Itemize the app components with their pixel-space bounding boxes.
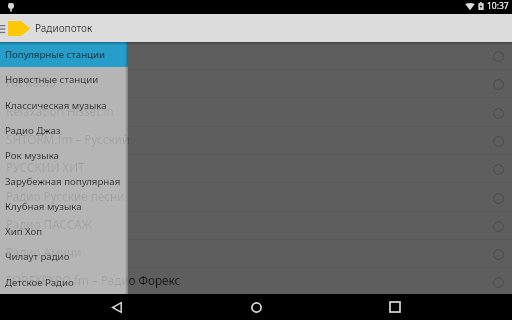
staticText: FOREXEXPO.fm – Радио Форекс	[6, 272, 493, 288]
button[interactable]: Популярные станции	[0, 42, 128, 67]
button[interactable]: Радио Джаз	[0, 118, 128, 143]
staticText: Радиопоток	[35, 21, 93, 35]
staticText: Клубная музыка	[5, 200, 82, 213]
staticText: Популярные станции	[5, 48, 106, 61]
button[interactable]: Relaxation Hisset.in	[0, 99, 512, 127]
staticText: Рок музыка	[5, 149, 59, 162]
staticText: Новостные станции	[5, 73, 99, 86]
button[interactable]: Новостные станции	[0, 67, 128, 92]
staticText: РУССКИЙ ХИТ	[6, 159, 493, 175]
button[interactable]: Back	[95, 294, 139, 320]
staticText: Радио Русские песни	[6, 188, 493, 204]
staticText: Радио Рекорд	[6, 301, 493, 317]
staticText: Хип Хоп	[5, 225, 43, 238]
staticText: HR Radio	[6, 74, 493, 90]
staticText: Классическая музыка	[5, 99, 107, 112]
button[interactable]: Home	[234, 294, 278, 320]
button[interactable]: SHTORM.fm – Русский	[0, 127, 512, 155]
staticText: Relaxation Hisset.in	[6, 103, 493, 119]
button[interactable]: Радио Рекорд	[0, 297, 512, 320]
staticText: Детское Радио	[5, 276, 74, 289]
button[interactable]: Рок музыка	[0, 143, 128, 168]
button[interactable]: Детское Радио	[0, 270, 128, 295]
button[interactable]: Классическая музыка	[0, 93, 128, 118]
button[interactable]: Радио ПАССАЖ	[0, 212, 512, 240]
staticText: Чилаут радио	[5, 250, 70, 263]
button[interactable]: Люкс FM	[0, 42, 512, 70]
button[interactable]: РУССКИЙ ХИТ	[0, 155, 512, 183]
button[interactable]: Зарубежная популярная	[0, 169, 128, 194]
button[interactable]: Recent apps	[373, 294, 417, 320]
staticText: Люкс FM	[6, 46, 493, 62]
button[interactable]: HR Radio	[0, 70, 512, 98]
staticText: 10:37	[487, 0, 509, 12]
button[interactable]: Клубная музыка	[0, 194, 128, 219]
button[interactable]: Хип Хоп	[0, 219, 128, 244]
staticText: Радио Амичи	[6, 244, 493, 260]
button[interactable]: Open navigation drawer	[0, 14, 8, 42]
staticText: Радио ПАССАЖ	[6, 216, 493, 232]
button[interactable]: FOREXEXPO.fm – Радио Форекс	[0, 268, 512, 296]
button[interactable]: Радио Амичи	[0, 240, 512, 268]
button[interactable]: Чилаут радио	[0, 244, 128, 269]
button[interactable]: Радио Русские песни	[0, 184, 512, 212]
staticText: Зарубежная популярная	[5, 175, 121, 188]
staticText: SHTORM.fm – Русский	[6, 131, 493, 147]
staticText: Радио Джаз	[5, 124, 61, 137]
